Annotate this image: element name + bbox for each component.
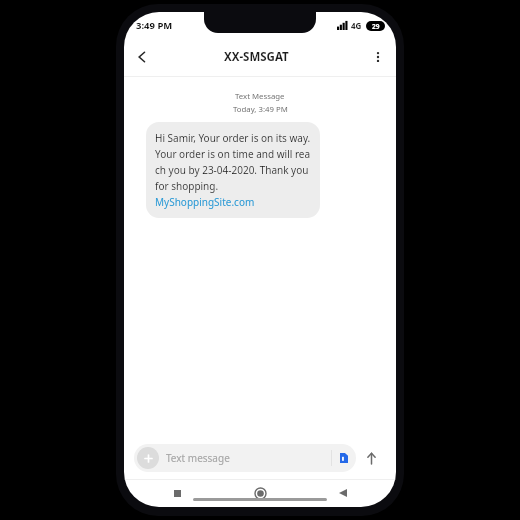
- staticText: Hi Samir, Your order is on its way.: [155, 131, 311, 145]
- staticText: for shopping.: [155, 179, 219, 193]
- button[interactable]: Add attachment: [137, 447, 159, 469]
- staticText: ch you by 23-04-2020. Thank you: [155, 163, 309, 177]
- button[interactable]: MyShoppingSite.com: [155, 195, 255, 209]
- staticText: Text Message: [235, 91, 285, 102]
- staticText: Today, 3:49 PM: [233, 104, 288, 115]
- staticText: 4G: [351, 20, 362, 31]
- button[interactable]: More options: [360, 39, 396, 75]
- button[interactable]: Back: [124, 39, 160, 75]
- button[interactable]: Recent apps: [166, 482, 188, 504]
- button[interactable]: Home: [249, 482, 271, 504]
- staticText: XX-SMSGAT: [224, 49, 289, 65]
- staticText: 29: [372, 22, 380, 31]
- staticText: Text message: [166, 451, 230, 465]
- staticText: Your order is on time and will rea: [155, 147, 311, 161]
- button[interactable]: Back: [332, 482, 354, 504]
- button[interactable]: SIM 1: [340, 453, 348, 463]
- button[interactable]: Send: [356, 443, 386, 473]
- staticText: 3:49 PM: [136, 19, 173, 32]
- button[interactable]: Hi Samir, Your order is on its way.: [146, 122, 320, 218]
- button[interactable]: Add attachment: [134, 444, 356, 472]
